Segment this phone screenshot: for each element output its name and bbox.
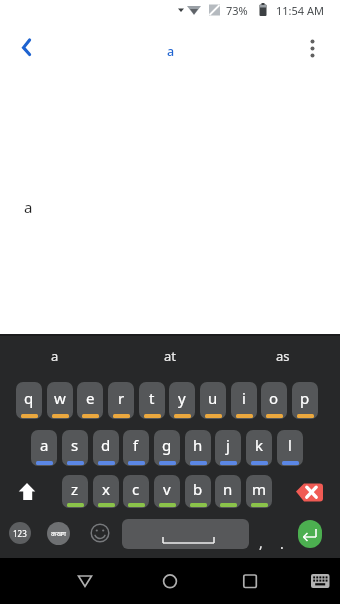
button[interactable]: at (135, 334, 205, 378)
button[interactable]: q (16, 382, 42, 419)
button[interactable]: i (231, 382, 257, 419)
staticText: h (193, 435, 203, 455)
staticText: v (163, 479, 171, 499)
button[interactable] (90, 523, 110, 543)
button[interactable] (72, 568, 98, 594)
staticText: m (252, 479, 267, 499)
button[interactable]: p (292, 382, 318, 419)
button[interactable]: h (185, 430, 211, 466)
staticText: c (132, 479, 140, 499)
button[interactable]: t (139, 382, 165, 419)
button[interactable]: 123 (9, 522, 31, 544)
staticText: a (51, 347, 59, 365)
button[interactable]: b (185, 475, 211, 508)
button[interactable] (292, 482, 328, 515)
button[interactable]: l (277, 430, 303, 466)
button[interactable] (122, 519, 249, 549)
button[interactable]: x (93, 475, 119, 508)
staticText: e (86, 388, 95, 408)
button[interactable]: n (215, 475, 241, 508)
staticText: . (280, 534, 284, 553)
staticText: r (118, 388, 125, 408)
button[interactable] (237, 568, 263, 594)
button[interactable]: g (154, 430, 180, 466)
button[interactable]: s (62, 430, 88, 466)
staticText: 11:54 AM (276, 3, 324, 18)
button[interactable]: v (154, 475, 180, 508)
staticText: 123 (13, 528, 27, 539)
button[interactable] (300, 36, 326, 62)
button[interactable] (298, 520, 322, 548)
staticText: l (288, 435, 292, 455)
staticText: y (178, 388, 186, 408)
button[interactable] (12, 475, 40, 508)
button[interactable]: j (215, 430, 241, 466)
button[interactable]: कखग (47, 522, 70, 545)
staticText: f (133, 435, 139, 455)
staticText: s (71, 435, 79, 455)
staticText: 73% (226, 3, 248, 18)
staticText: n (223, 479, 233, 499)
button[interactable]: d (93, 430, 119, 466)
button[interactable]: c (123, 475, 149, 508)
staticText: d (101, 435, 111, 455)
button[interactable]: y (169, 382, 195, 419)
button[interactable] (12, 35, 36, 59)
button[interactable] (157, 568, 183, 594)
staticText: at (164, 347, 176, 365)
button[interactable]: o (261, 382, 287, 419)
staticText: i (242, 388, 246, 408)
button[interactable]: as (248, 334, 318, 378)
button[interactable]: k (246, 430, 272, 466)
staticText: a (24, 197, 33, 217)
button[interactable]: w (47, 382, 73, 419)
staticText: a (40, 435, 49, 455)
button[interactable]: f (123, 430, 149, 466)
staticText: , (259, 533, 263, 552)
button[interactable]: a (20, 334, 90, 378)
button[interactable] (310, 573, 330, 589)
button[interactable]: r (108, 382, 134, 419)
button[interactable]: m (246, 475, 272, 508)
staticText: p (300, 388, 310, 408)
button[interactable]: a (31, 430, 57, 466)
staticText: t (149, 388, 155, 408)
button[interactable]: z (62, 475, 88, 508)
staticText: a (167, 43, 175, 60)
staticText: w (54, 388, 66, 408)
staticText: b (193, 479, 203, 499)
staticText: कखग (51, 529, 67, 539)
staticText: k (255, 435, 264, 455)
staticText: j (226, 435, 230, 455)
button[interactable]: u (200, 382, 226, 419)
staticText: u (208, 388, 218, 408)
staticText: g (162, 435, 172, 455)
staticText: o (269, 388, 279, 408)
staticText: z (71, 479, 79, 499)
staticText: q (24, 388, 34, 408)
staticText: x (102, 479, 110, 499)
button[interactable]: e (77, 382, 103, 419)
staticText: as (276, 347, 290, 365)
